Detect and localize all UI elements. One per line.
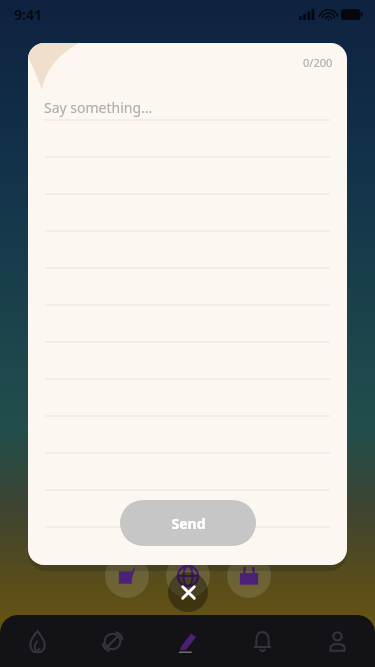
button[interactable]: Write a scroll	[105, 554, 149, 598]
staticText: Send	[171, 514, 206, 533]
staticText: Say something...	[44, 98, 153, 117]
staticText: 9:41	[14, 5, 42, 24]
button[interactable]: Explore	[166, 554, 210, 598]
button[interactable]: Send	[120, 500, 256, 546]
button[interactable]: Close	[168, 572, 208, 612]
button[interactable]: Notifications	[225, 615, 300, 667]
button[interactable]: Compose	[150, 615, 225, 667]
button[interactable]: Say something...	[44, 98, 153, 117]
button[interactable]: Discover	[75, 615, 150, 667]
button[interactable]: Home	[0, 615, 75, 667]
button[interactable]: Profile	[300, 615, 375, 667]
staticText: 0/200	[303, 55, 333, 70]
button[interactable]: Market	[227, 554, 271, 598]
